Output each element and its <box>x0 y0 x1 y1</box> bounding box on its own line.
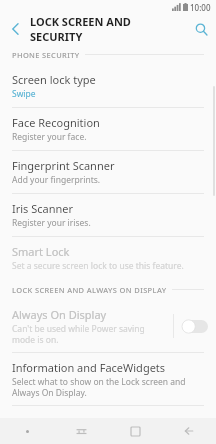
button[interactable]: Face Recognition <box>0 108 216 150</box>
staticText: Set a secure screen lock to use this fea… <box>12 260 184 272</box>
button[interactable]: Information and FaceWidgets <box>0 353 216 405</box>
staticText: PHONE SECURITY <box>12 50 80 60</box>
staticText: Fingerprint Scanner <box>12 158 115 173</box>
button[interactable]: Always On Display <box>0 300 216 352</box>
button[interactable]: Always On Display off <box>174 310 216 342</box>
staticText: Select what to show on the Lock screen a… <box>12 376 204 398</box>
button[interactable]: Menu <box>0 418 54 444</box>
button[interactable]: Iris Scanner <box>0 194 216 236</box>
staticText: Swipe <box>12 88 36 100</box>
button[interactable]: Fingerprint Scanner <box>0 151 216 193</box>
staticText: Register your face. <box>12 131 87 143</box>
staticText: Iris Scanner <box>12 201 74 216</box>
staticText: LOCK SCREEN AND SECURITY <box>30 14 186 44</box>
staticText: Information and FaceWidgets <box>12 360 166 375</box>
button[interactable]: Smart Lock <box>0 237 216 279</box>
staticText: 10:00 <box>190 2 211 13</box>
staticText: Smart Lock <box>12 244 70 259</box>
staticText: LOCK SCREEN AND ALWAYS ON DISPLAY <box>12 285 167 295</box>
button[interactable]: Navigate up <box>0 14 30 44</box>
staticText: Always On Display <box>12 307 107 322</box>
button[interactable]: Screen lock type <box>0 65 216 107</box>
staticText: Register your irises. <box>12 217 91 229</box>
staticText: Screen lock type <box>12 72 96 87</box>
staticText: Can't be used while Power saving mode is… <box>12 323 167 345</box>
staticText: Add your fingerprints. <box>12 174 101 186</box>
staticText: Face Recognition <box>12 115 100 130</box>
button[interactable]: Recents <box>54 418 108 444</box>
button[interactable]: Home <box>108 418 162 444</box>
button[interactable]: Back <box>162 418 216 444</box>
button[interactable]: Search <box>186 14 216 44</box>
